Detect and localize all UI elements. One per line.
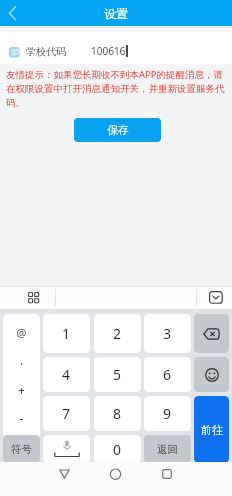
button[interactable]: @ bbox=[3, 314, 40, 440]
staticText: 学校代码 bbox=[26, 45, 66, 58]
button[interactable]: 符号 bbox=[3, 435, 40, 463]
staticText: 友情提示：如果您长期收不到本APP的提醒消息，请 在权限设置中打开消息通知开关，… bbox=[6, 68, 225, 109]
button[interactable] bbox=[110, 469, 121, 480]
button[interactable]: 学校代码 bbox=[0, 29, 232, 64]
staticText: 符号 bbox=[11, 443, 32, 456]
staticText: 4 bbox=[62, 365, 71, 384]
staticText: 1 bbox=[62, 324, 71, 343]
staticText: 6 bbox=[163, 365, 172, 384]
staticText: @ bbox=[3, 325, 40, 340]
staticText: 保存 bbox=[107, 123, 129, 137]
button[interactable]: 5 bbox=[94, 357, 141, 392]
button[interactable]: 9 bbox=[144, 396, 191, 431]
staticText: 返回 bbox=[157, 443, 178, 456]
button[interactable] bbox=[43, 435, 90, 463]
staticText: 3 bbox=[163, 324, 172, 343]
staticText: 前往 bbox=[201, 423, 223, 437]
staticText: 2 bbox=[113, 324, 122, 343]
button[interactable] bbox=[209, 291, 223, 304]
button[interactable] bbox=[59, 469, 70, 479]
staticText: + bbox=[3, 382, 40, 398]
staticText: 9 bbox=[163, 404, 172, 423]
button[interactable] bbox=[194, 314, 229, 353]
staticText: 设置 bbox=[104, 6, 128, 21]
staticText: - bbox=[3, 410, 40, 426]
button[interactable] bbox=[162, 469, 172, 479]
button[interactable]: 返回 bbox=[144, 435, 191, 463]
button[interactable]: 0 bbox=[94, 435, 141, 463]
button[interactable] bbox=[28, 292, 40, 304]
button[interactable]: 7 bbox=[43, 396, 90, 431]
button[interactable]: 保存 bbox=[74, 118, 161, 142]
button[interactable]: 6 bbox=[144, 357, 191, 392]
staticText: 8 bbox=[113, 404, 122, 423]
button[interactable]: 前往 bbox=[194, 396, 229, 463]
button[interactable]: 2 bbox=[94, 314, 141, 353]
staticText: 7 bbox=[62, 404, 71, 423]
button[interactable]: 8 bbox=[94, 396, 141, 431]
staticText: 100616 bbox=[91, 44, 126, 58]
button[interactable] bbox=[194, 357, 229, 392]
button[interactable]: 设置 bbox=[0, 0, 232, 26]
staticText: 0 bbox=[113, 440, 122, 459]
button[interactable]: 1 bbox=[43, 314, 90, 353]
button[interactable]: 4 bbox=[43, 357, 90, 392]
button[interactable]: 3 bbox=[144, 314, 191, 353]
staticText: 5 bbox=[113, 365, 122, 384]
staticText: . bbox=[3, 352, 40, 368]
